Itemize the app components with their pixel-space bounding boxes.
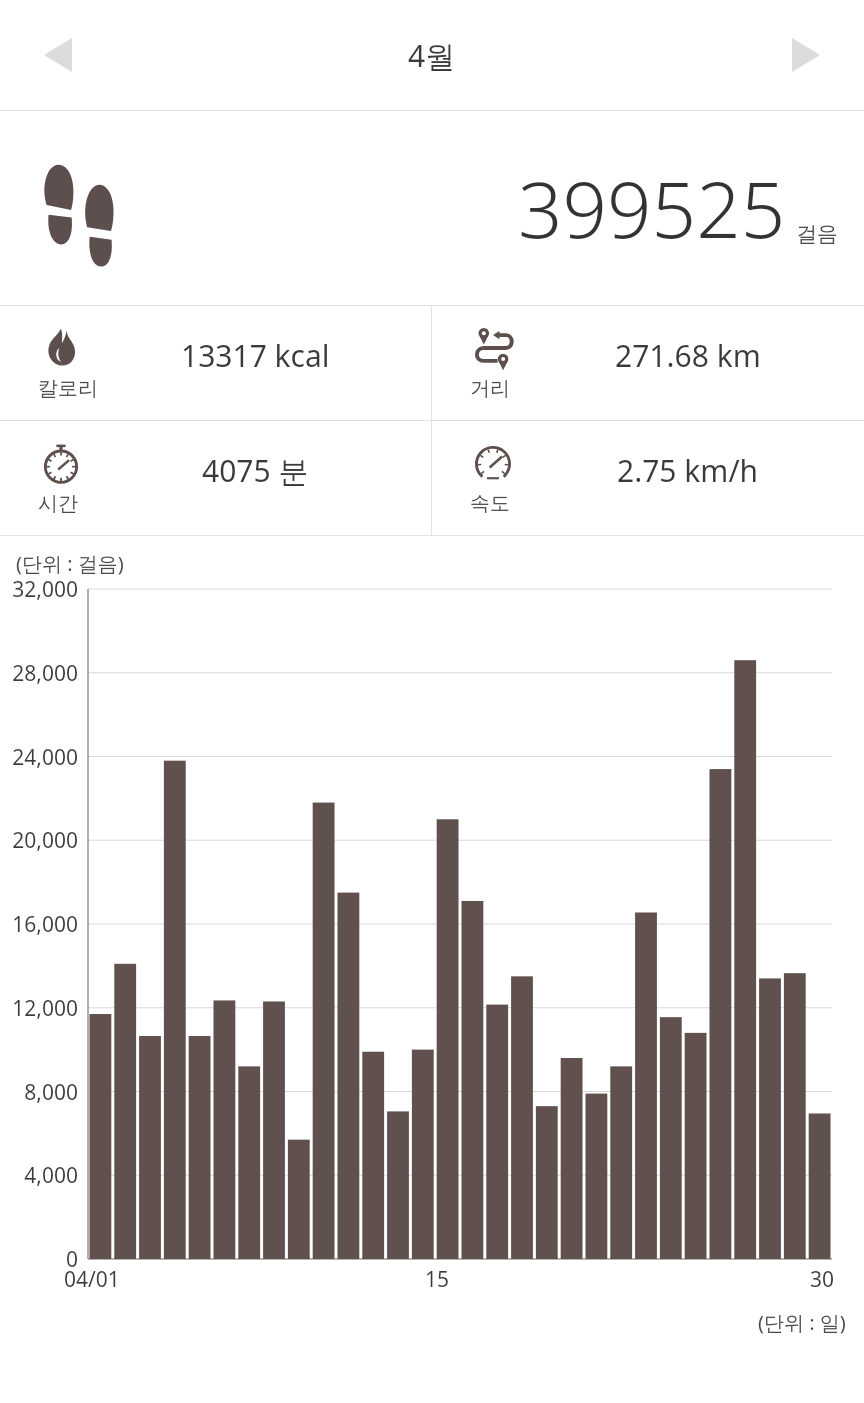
staticText: 04/01 — [64, 1265, 120, 1294]
staticText: 거리 — [470, 376, 510, 401]
staticText: 8,000 — [0, 1078, 78, 1107]
staticText: 30 — [810, 1265, 835, 1294]
staticText: 4월 — [408, 35, 456, 76]
staticText: 4,000 — [0, 1161, 78, 1190]
staticText: (단위 : 걸음) — [16, 550, 124, 577]
staticText: 걸음 — [796, 221, 838, 247]
button[interactable]: 399525 — [0, 111, 864, 305]
staticText: 칼로리 — [38, 376, 98, 401]
staticText: 32,000 — [0, 575, 78, 604]
staticText: 24,000 — [0, 743, 78, 772]
staticText: 시간 — [38, 491, 78, 516]
staticText: 271.68 km — [615, 335, 761, 376]
staticText: 속도 — [470, 491, 510, 516]
button[interactable]: 칼로리 — [0, 306, 431, 420]
staticText: 28,000 — [0, 659, 78, 688]
staticText: 12,000 — [0, 994, 78, 1023]
staticText: 20,000 — [0, 826, 78, 855]
staticText: (단위 : 일) — [758, 1309, 846, 1336]
staticText: 15 — [425, 1265, 450, 1294]
button[interactable]: Previous month — [22, 19, 94, 91]
staticText: 16,000 — [0, 910, 78, 939]
button[interactable]: 시간 — [0, 421, 431, 535]
staticText: 0 — [0, 1245, 78, 1274]
staticText: 4075 분 — [202, 450, 309, 491]
staticText: 399525 — [518, 155, 786, 261]
staticText: 13317 kcal — [181, 335, 330, 376]
button[interactable]: 거리 — [432, 306, 864, 420]
button[interactable]: Next month — [770, 19, 842, 91]
button[interactable]: 속도 — [432, 421, 864, 535]
staticText: 2.75 km/h — [617, 450, 759, 491]
